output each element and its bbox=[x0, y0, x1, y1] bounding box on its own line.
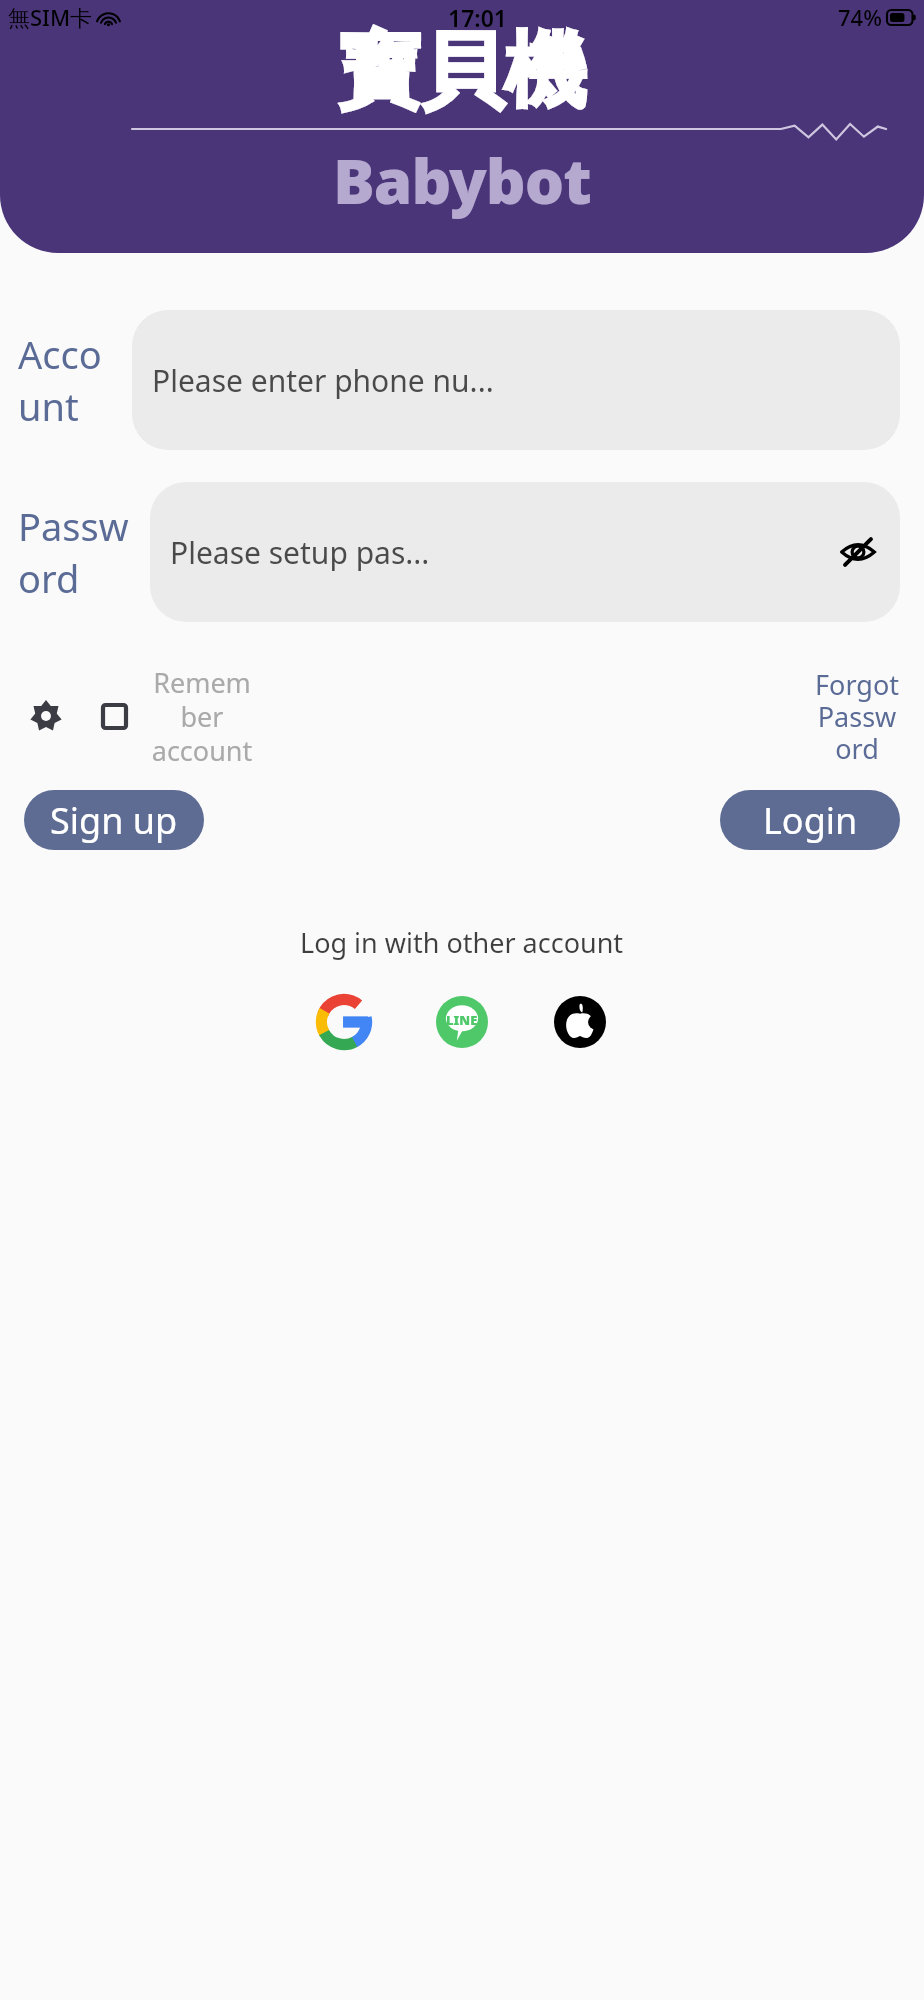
staticText: 寶貝機 bbox=[338, 20, 587, 123]
button[interactable]: Sign in with Google bbox=[307, 985, 381, 1059]
staticText: 無SIM卡 bbox=[8, 2, 93, 32]
button[interactable]: Remember account checkbox bbox=[92, 694, 136, 738]
staticText: Forgot Password bbox=[814, 666, 900, 767]
staticText: Babybot bbox=[333, 138, 591, 222]
staticText: Account bbox=[18, 328, 122, 432]
staticText: Please setup pas... bbox=[170, 532, 430, 573]
button[interactable]: Sign in with LINE bbox=[425, 985, 499, 1059]
button[interactable]: Forgot Password bbox=[814, 666, 900, 767]
staticText: Sign up bbox=[50, 796, 178, 845]
button[interactable]: Settings bbox=[20, 690, 72, 742]
button[interactable]: Login bbox=[720, 790, 900, 850]
button[interactable]: Remember account bbox=[148, 664, 256, 769]
staticText: Please enter phone nu... bbox=[152, 360, 494, 401]
staticText: 17:01 bbox=[448, 2, 507, 33]
button[interactable]: Sign in with Apple bbox=[543, 985, 617, 1059]
button[interactable]: Show password bbox=[832, 526, 884, 578]
staticText: Login bbox=[763, 796, 858, 845]
staticText: 74% bbox=[838, 2, 882, 32]
staticText: Log in with other account bbox=[300, 924, 624, 961]
staticText: Remember account bbox=[148, 664, 256, 769]
button[interactable]: Please setup pas... bbox=[150, 482, 900, 622]
button[interactable]: Sign up bbox=[24, 790, 204, 850]
button[interactable]: Please enter phone nu... bbox=[132, 310, 900, 450]
staticText: LINE bbox=[446, 1011, 478, 1029]
staticText: Password bbox=[18, 500, 140, 604]
